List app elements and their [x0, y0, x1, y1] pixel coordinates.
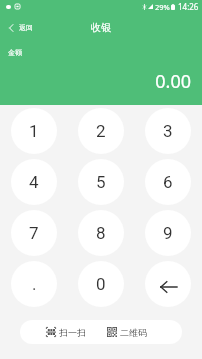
staticText: 2 — [96, 121, 106, 141]
other: Backspace — [160, 281, 177, 293]
button[interactable]: QR code — [107, 320, 182, 344]
button[interactable]: 4 — [11, 159, 57, 205]
button[interactable]: 2 — [78, 108, 124, 154]
button[interactable]: 9 — [145, 210, 191, 256]
button[interactable]: Scan — [46, 320, 182, 344]
button[interactable]: 5 — [78, 159, 124, 205]
button[interactable]: 7 — [11, 210, 57, 256]
staticText: . — [32, 274, 37, 294]
button[interactable]: 1 — [11, 108, 57, 154]
button[interactable]: 3 — [145, 108, 191, 154]
staticText: 扫一扫 — [59, 327, 86, 338]
button[interactable]: 6 — [145, 159, 191, 205]
other: QR code — [107, 327, 117, 337]
staticText: 0.00 — [0, 69, 191, 94]
staticText: 5 — [96, 172, 106, 192]
staticText: 14:26 — [178, 1, 199, 12]
staticText: 收银 — [91, 21, 111, 34]
staticText: 金额 — [8, 48, 22, 57]
button[interactable]: Backspace — [145, 261, 191, 307]
staticText: 29% — [155, 2, 170, 12]
staticText: 3 — [163, 121, 173, 141]
staticText: 二维码 — [120, 327, 147, 338]
button[interactable]: 返回 — [0, 20, 41, 35]
staticText: 7 — [29, 223, 39, 243]
staticText: 6 — [163, 172, 173, 192]
staticText: 返回 — [19, 23, 33, 32]
other: Scan — [46, 327, 56, 337]
staticText: 8 — [96, 223, 106, 243]
button[interactable]: . — [11, 261, 57, 307]
button[interactable]: 0 — [78, 261, 124, 307]
staticText: 1 — [29, 121, 39, 141]
staticText: 9 — [163, 223, 173, 243]
staticText: 4 — [29, 172, 39, 192]
staticText: 0 — [96, 274, 106, 294]
button[interactable]: 8 — [78, 210, 124, 256]
